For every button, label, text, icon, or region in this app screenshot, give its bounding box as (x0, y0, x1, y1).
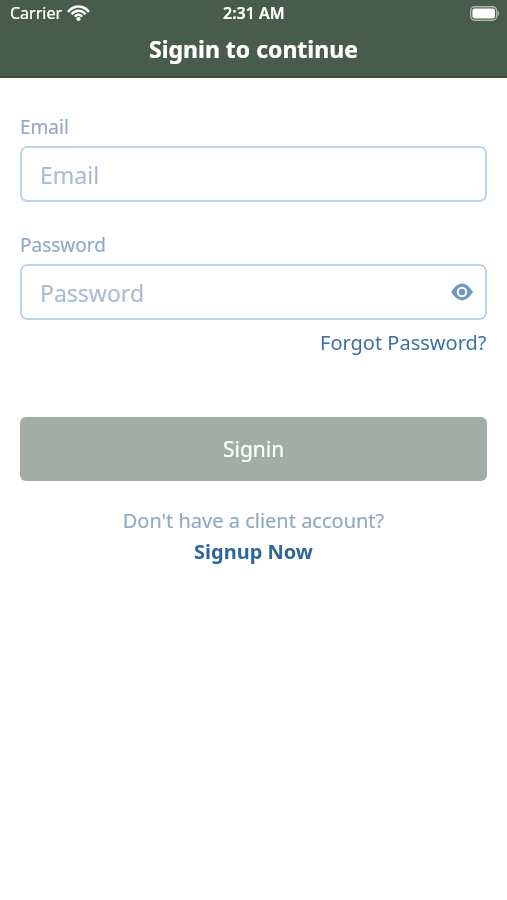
button[interactable]: Email (20, 146, 487, 202)
staticText: Email (40, 159, 100, 190)
button[interactable]: Signup Now (194, 538, 313, 565)
staticText: 2:31 AM (223, 2, 285, 24)
button[interactable]: Forgot Password? (320, 329, 487, 356)
staticText: Don't have a client account? (20, 507, 487, 534)
staticText: Password (40, 277, 145, 308)
button[interactable] (451, 284, 473, 300)
staticText: Signin to continue (149, 33, 358, 64)
staticText: Email (20, 114, 69, 140)
staticText: Signin (223, 435, 285, 464)
staticText: Password (20, 232, 106, 258)
staticText: Carrier (10, 2, 63, 24)
button[interactable]: Signin (20, 417, 487, 481)
button[interactable]: Password (20, 264, 487, 320)
